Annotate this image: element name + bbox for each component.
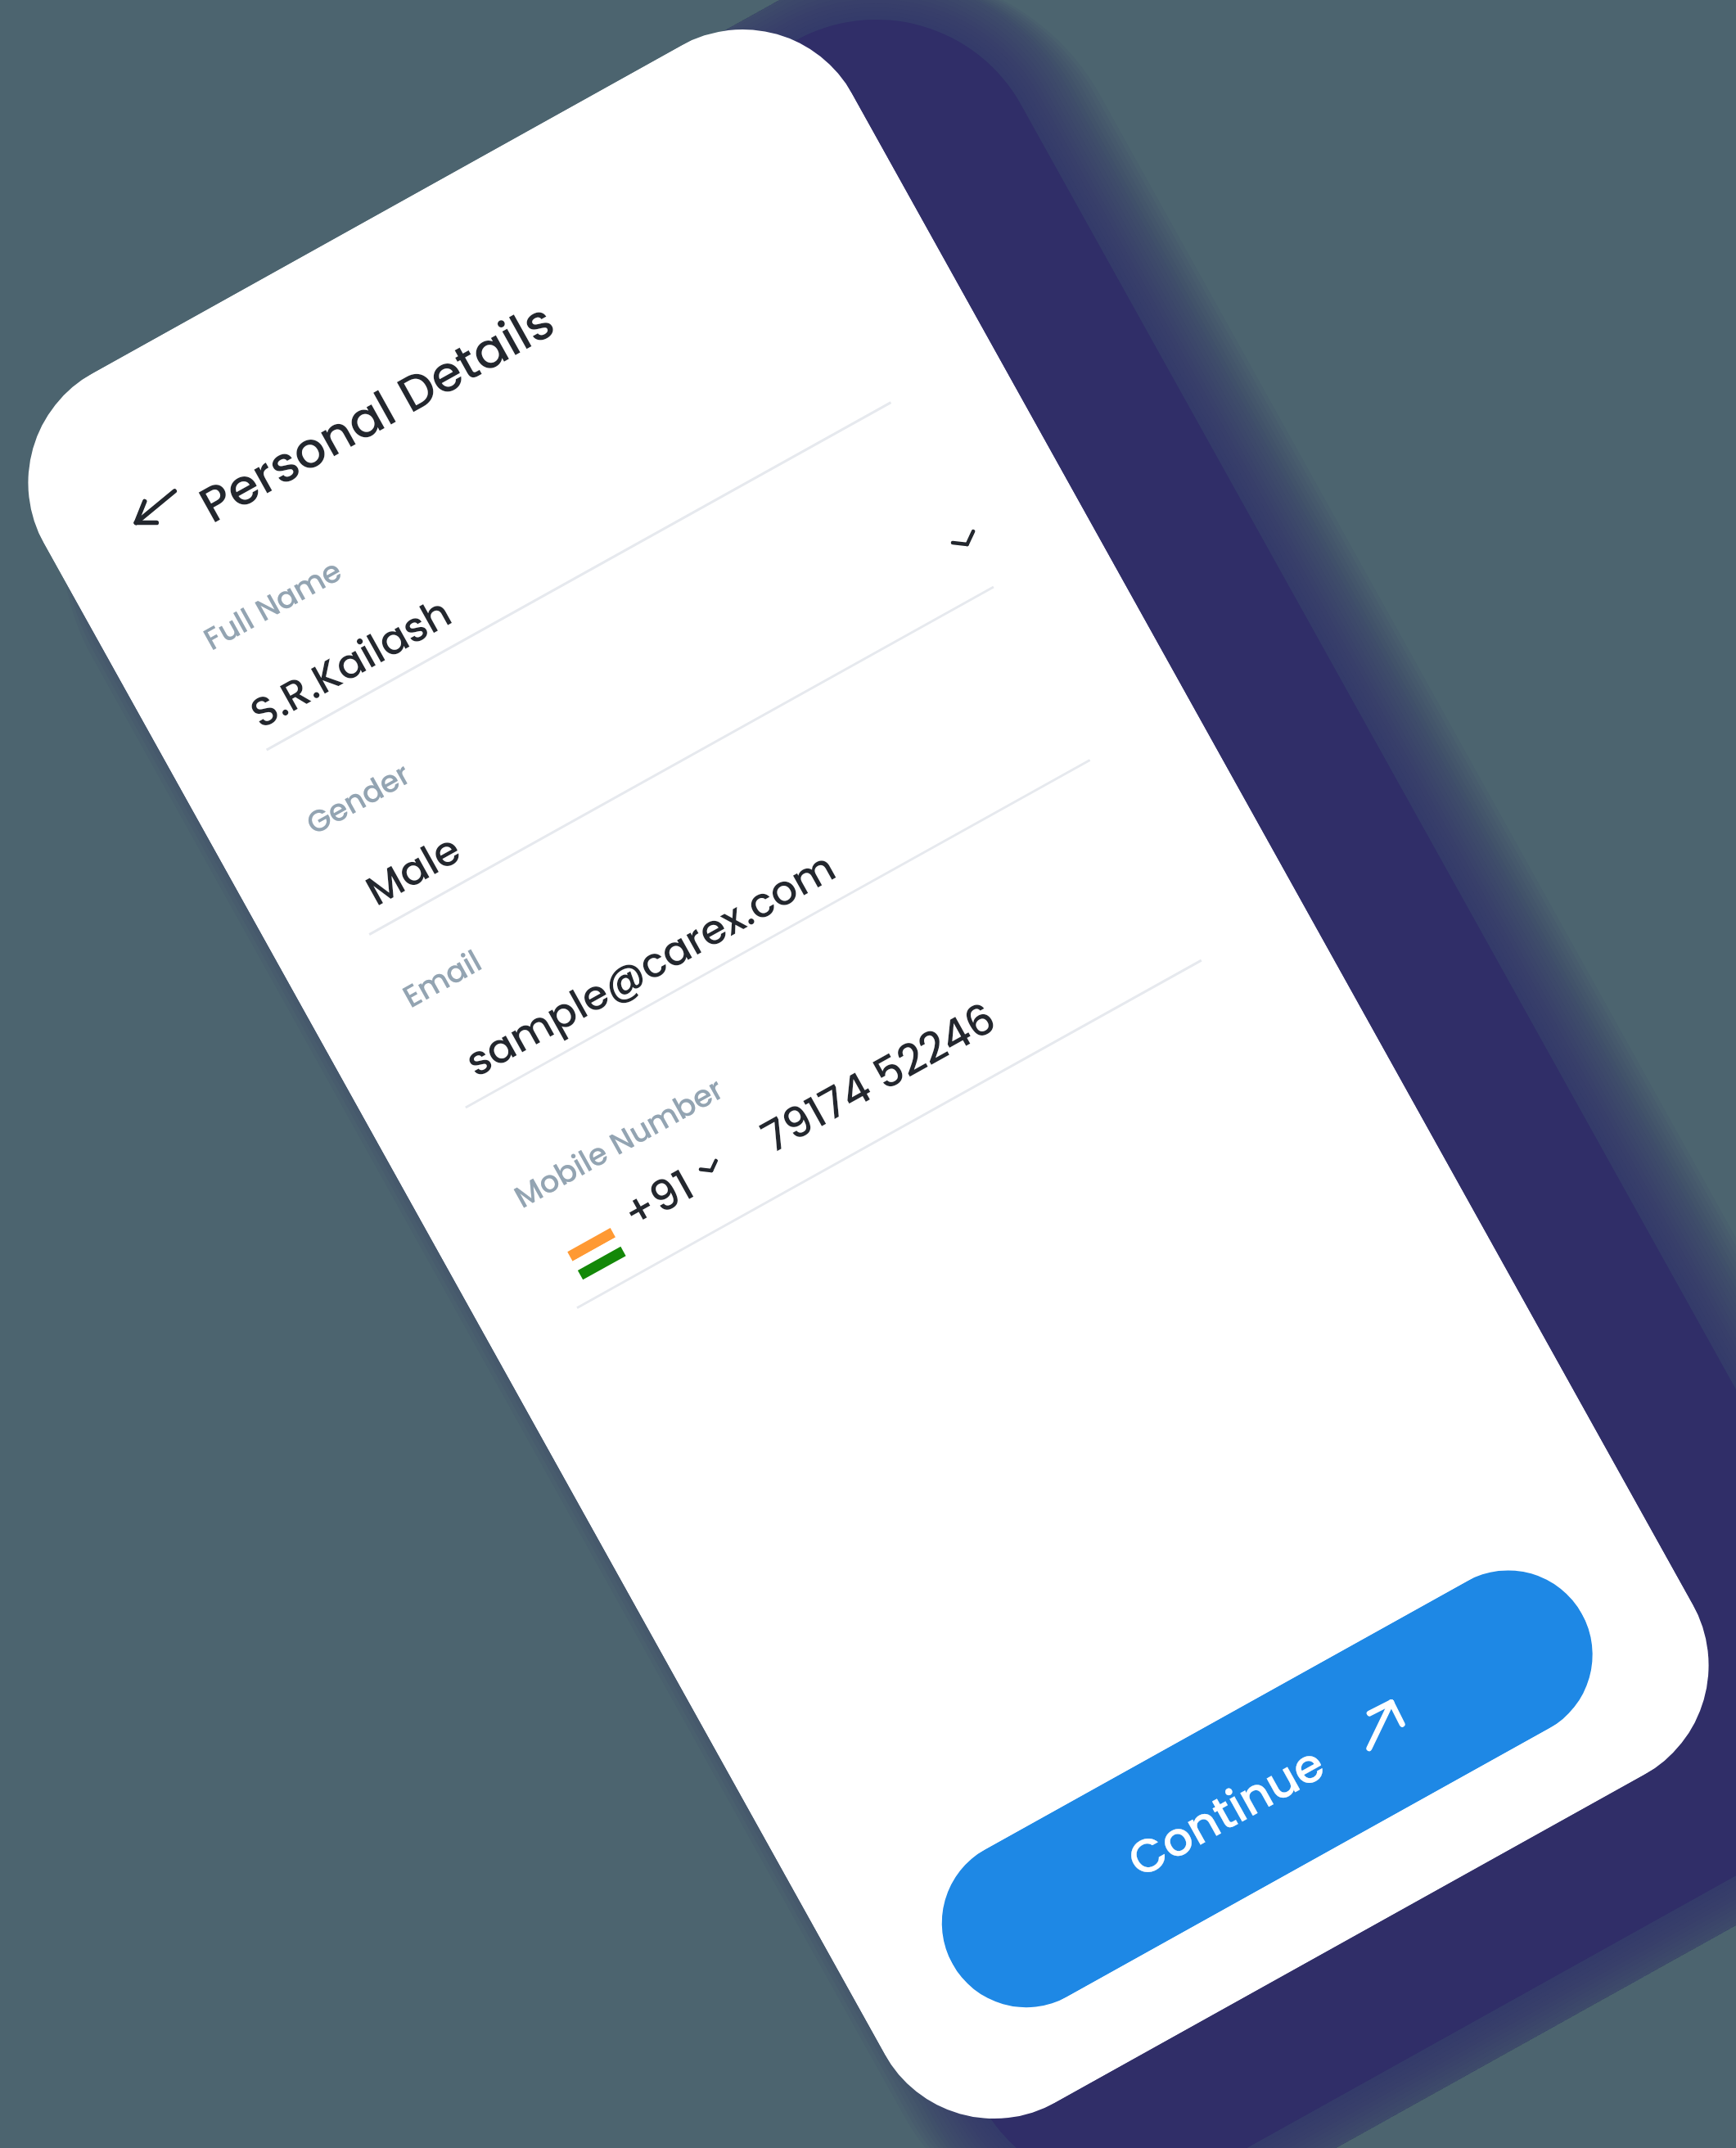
button[interactable]: Back [116, 472, 192, 547]
staticText: Male [356, 821, 471, 920]
button[interactable] [730, 863, 1199, 1188]
staticText: Full Name [196, 549, 350, 660]
staticText: Continue [1116, 1731, 1336, 1893]
staticText: +91 [612, 1155, 705, 1243]
button[interactable] [291, 446, 994, 936]
staticText: Personal Details [187, 286, 567, 539]
button[interactable] [387, 620, 1091, 1109]
button[interactable]: Continue [912, 1540, 1623, 2038]
button[interactable]: Select country code [561, 1153, 745, 1292]
staticText: 79174 52246 [750, 988, 1006, 1167]
staticText: Email [395, 940, 489, 1018]
staticText: S.R.Kailash [240, 584, 462, 742]
staticText: Mobile Number [506, 1067, 731, 1218]
staticText: sample@carex.com [455, 839, 846, 1091]
button[interactable] [188, 262, 891, 751]
button[interactable]: Select gender [942, 518, 987, 562]
staticText: Gender [299, 753, 418, 845]
